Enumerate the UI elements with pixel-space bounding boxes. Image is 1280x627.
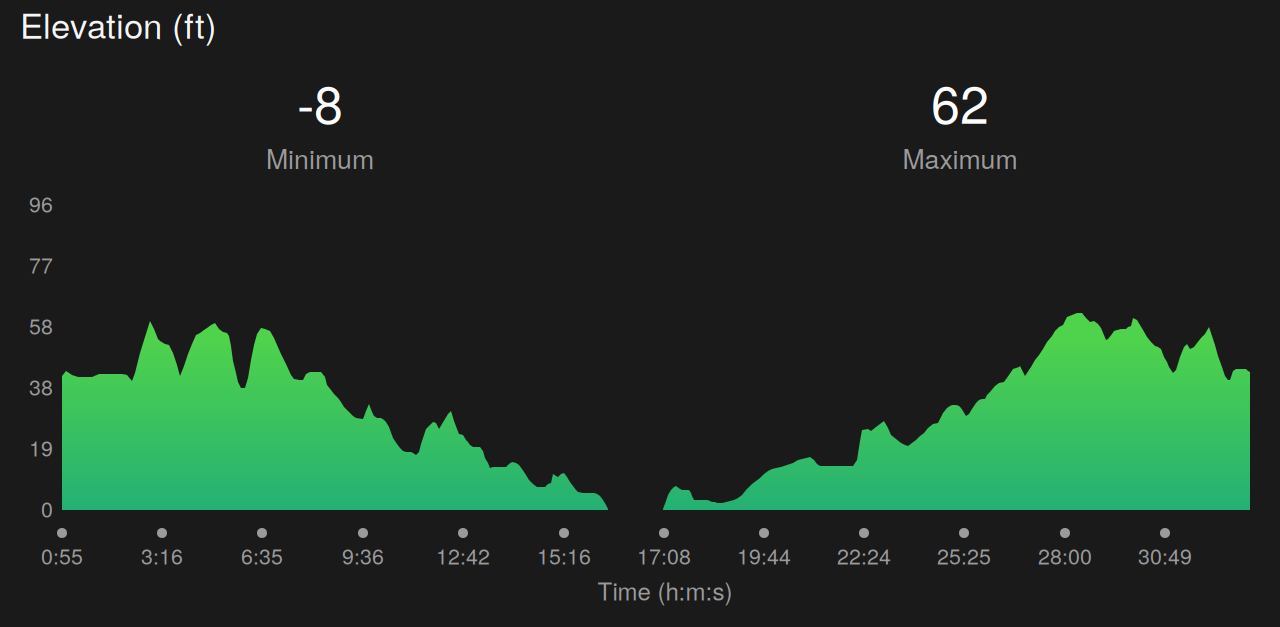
staticText: 15:16 (537, 540, 591, 570)
staticText: 0 (41, 493, 53, 523)
staticText: Elevation (ft) (20, 0, 217, 49)
staticText: 30:49 (1138, 540, 1192, 570)
staticText: 3:16 (141, 540, 183, 570)
staticText: 58 (29, 310, 53, 340)
staticText: 19 (29, 432, 53, 462)
staticText: 12:42 (436, 540, 490, 570)
staticText: 77 (29, 249, 53, 279)
staticText: 62 (931, 64, 989, 138)
staticText: 17:08 (637, 540, 691, 570)
staticText: 28:00 (1038, 540, 1092, 570)
staticText: -8 (297, 64, 343, 138)
staticText: Time (h:m:s) (597, 573, 732, 607)
staticText: 6:35 (241, 540, 283, 570)
staticText: Minimum (266, 138, 374, 177)
staticText: Maximum (902, 138, 1017, 177)
staticText: 38 (29, 371, 53, 401)
staticText: 22:24 (837, 540, 891, 570)
staticText: 0:55 (41, 540, 83, 570)
staticText: 25:25 (937, 540, 991, 570)
staticText: 9:36 (342, 540, 384, 570)
staticText: 19:44 (737, 540, 791, 570)
staticText: 96 (29, 188, 53, 218)
